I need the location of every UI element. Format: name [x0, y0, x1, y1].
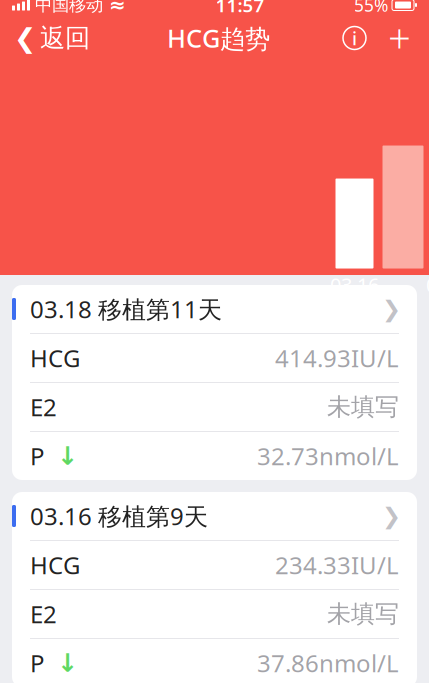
- staticText: E2: [30, 598, 57, 630]
- staticText: 11:57: [215, 0, 264, 17]
- staticText: i: [352, 26, 357, 50]
- button[interactable]: 添加: [376, 16, 423, 60]
- button[interactable]: 信息: [333, 16, 376, 60]
- staticText: ↓: [57, 649, 78, 677]
- staticText: HCG: [30, 342, 80, 374]
- staticText: ❯: [382, 503, 401, 529]
- staticText: E2: [30, 391, 57, 423]
- staticText: ❯: [382, 296, 401, 322]
- staticText: ↓: [57, 442, 78, 470]
- staticText: 414.93IU/L: [275, 342, 399, 374]
- staticText: ≈: [109, 0, 126, 16]
- staticText: 03.16 移植第9天: [30, 500, 208, 532]
- staticText: 03.18 移植第11天: [30, 293, 222, 325]
- staticText: HCG趋势: [167, 21, 270, 55]
- staticText: 中国移动: [35, 0, 103, 16]
- button[interactable]: 03.16 移植第9天: [12, 492, 417, 540]
- staticText: 03.18: [426, 271, 429, 298]
- button[interactable]: ❮: [0, 16, 104, 60]
- staticText: 55%: [354, 0, 388, 16]
- staticText: 未填写: [327, 599, 399, 629]
- staticText: HCG: [30, 549, 80, 581]
- staticText: 234.33IU/L: [275, 549, 399, 581]
- staticText: +: [388, 11, 411, 64]
- staticText: P: [30, 647, 45, 679]
- staticText: 37.86nmol/L: [257, 647, 399, 679]
- staticText: 返回: [40, 22, 90, 53]
- button[interactable]: 03.18 移植第11天: [12, 285, 417, 333]
- staticText: ❮: [14, 23, 36, 53]
- staticText: 未填写: [327, 392, 399, 422]
- staticText: P: [30, 440, 45, 472]
- staticText: 32.73nmol/L: [257, 440, 399, 472]
- staticText: 03.16: [330, 271, 379, 298]
